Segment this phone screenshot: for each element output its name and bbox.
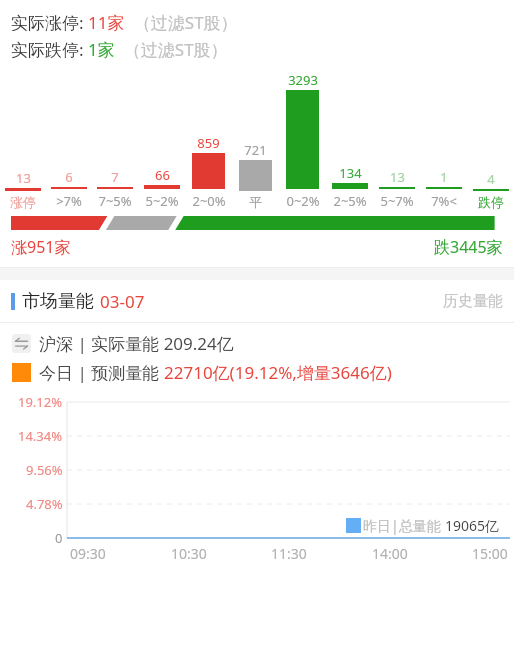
staticText: 实际跌停: bbox=[11, 38, 88, 61]
button[interactable] bbox=[11, 216, 503, 230]
staticText: 14.34% bbox=[18, 427, 63, 445]
staticText: 跌3445家 bbox=[434, 236, 503, 258]
staticText: 今日 | 预测量能 bbox=[39, 361, 164, 384]
staticText: 11家 bbox=[88, 11, 125, 34]
staticText: （过滤ST股） bbox=[125, 11, 238, 34]
staticText: 10:30 bbox=[171, 544, 207, 563]
staticText: 1 bbox=[440, 168, 448, 186]
staticText: 4 bbox=[487, 170, 495, 188]
staticText: 0 bbox=[55, 529, 63, 547]
staticText: 859 bbox=[197, 134, 220, 152]
staticText: 7%< bbox=[431, 192, 457, 210]
staticText: 1家 bbox=[88, 38, 115, 61]
staticText: 2~5% bbox=[333, 192, 367, 210]
staticText: 平 bbox=[249, 194, 262, 210]
staticText: 跌停 bbox=[478, 194, 504, 210]
staticText: 市场量能 bbox=[22, 290, 94, 313]
staticText: 66 bbox=[155, 166, 170, 184]
button[interactable]: 今日预测量能 bbox=[12, 361, 514, 384]
staticText: 11:30 bbox=[271, 544, 307, 563]
staticText: 6 bbox=[65, 168, 73, 186]
staticText: 7~5% bbox=[98, 192, 132, 210]
staticText: 14:00 bbox=[372, 544, 408, 563]
staticText: 22710亿(19.12%,增量3646亿) bbox=[164, 361, 392, 384]
staticText: 涨951家 bbox=[11, 236, 71, 258]
staticText: 实际涨停: bbox=[11, 11, 88, 34]
staticText: 13 bbox=[390, 168, 405, 186]
staticText: 15:00 bbox=[472, 544, 508, 563]
staticText: 09:30 bbox=[70, 544, 106, 563]
staticText: 5~2% bbox=[145, 192, 179, 210]
button[interactable]: 昨日|总量能 bbox=[346, 516, 500, 535]
staticText: 沪深 | 实际量能 209.24亿 bbox=[39, 332, 234, 355]
staticText: 5~7% bbox=[380, 192, 414, 210]
staticText: 2~0% bbox=[192, 192, 226, 210]
staticText: 19065亿 bbox=[445, 516, 500, 535]
staticText: >7% bbox=[56, 192, 82, 210]
staticText: 7 bbox=[111, 168, 119, 186]
staticText: 3293 bbox=[288, 71, 318, 89]
staticText: 03-07 bbox=[100, 290, 145, 313]
staticText: 0~2% bbox=[286, 192, 320, 210]
staticText: 134 bbox=[339, 164, 362, 182]
staticText: （过滤ST股） bbox=[115, 38, 228, 61]
staticText: 721 bbox=[244, 141, 267, 159]
staticText: 历史量能 bbox=[443, 292, 503, 311]
staticText: 13 bbox=[16, 169, 31, 187]
staticText: 昨日|总量能 bbox=[363, 516, 445, 535]
other: 切换市场 bbox=[12, 334, 31, 353]
staticText: 9.56% bbox=[26, 461, 63, 479]
button[interactable]: 切换市场 bbox=[12, 332, 514, 355]
button[interactable]: 历史量能 bbox=[443, 292, 503, 311]
staticText: 涨停 bbox=[10, 194, 36, 210]
staticText: 19.12% bbox=[18, 393, 63, 411]
staticText: 4.78% bbox=[26, 495, 63, 513]
